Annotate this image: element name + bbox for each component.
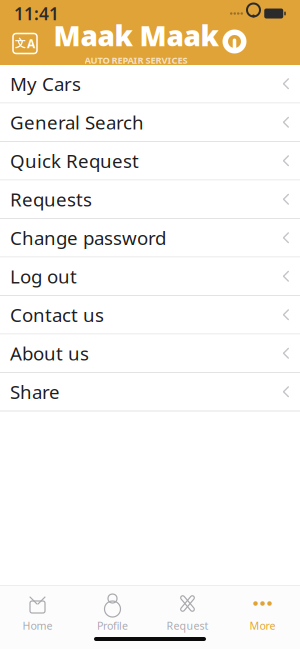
staticText: Change password [10, 225, 166, 250]
staticText: General Search [10, 110, 144, 135]
staticText: My Cars [10, 71, 81, 96]
staticText: Log out [10, 264, 77, 289]
button[interactable]: More [225, 591, 300, 635]
button[interactable]: About us [0, 334, 300, 373]
button[interactable]: Change password [0, 219, 300, 257]
staticText: 11:41 [14, 2, 59, 25]
button[interactable]: Request [150, 591, 225, 635]
staticText: 文 [15, 37, 26, 50]
staticText: Share [10, 379, 60, 404]
staticText: AUTO REPAIR SERVICES [84, 54, 187, 66]
button[interactable]: Contact us [0, 296, 300, 334]
staticText: Requests [10, 187, 92, 212]
button[interactable]: Quick Request [0, 142, 300, 180]
staticText: About us [10, 341, 89, 366]
button[interactable]: General Search [0, 103, 300, 142]
staticText: Quick Request [10, 148, 139, 173]
staticText: A [27, 35, 35, 51]
staticText: Contact us [10, 302, 104, 327]
staticText: Maak Maak [53, 17, 218, 54]
staticText: Request [166, 618, 208, 633]
button[interactable]: Log out [0, 257, 300, 296]
button[interactable]: Requests [0, 180, 300, 219]
staticText: More [249, 618, 275, 633]
staticText: Home [22, 618, 52, 633]
button[interactable]: Share [0, 373, 300, 411]
button[interactable]: Profile [75, 591, 150, 635]
button[interactable]: Home [0, 591, 75, 635]
button[interactable]: My Cars [0, 65, 300, 103]
button[interactable]: Translate [8, 26, 42, 60]
staticText: Profile [97, 618, 128, 633]
